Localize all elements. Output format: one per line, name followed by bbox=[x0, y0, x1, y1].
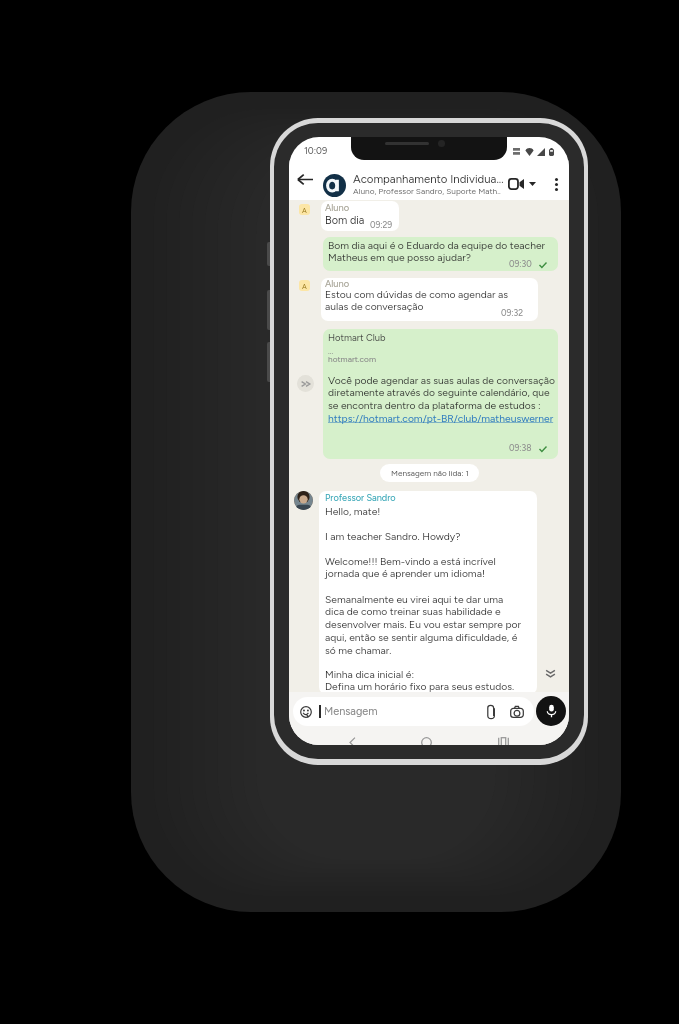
staticText: ... bbox=[328, 346, 334, 356]
staticText: Hello, mate! bbox=[325, 505, 381, 517]
button[interactable]: Home bbox=[418, 734, 434, 745]
button[interactable]: Mensagem bbox=[293, 697, 534, 726]
staticText: https://hotmart.com/pt-BR/club/matheuswe… bbox=[328, 412, 554, 424]
staticText: Professor Sandro bbox=[325, 492, 396, 503]
staticText: Estou com dúvidas de como agendar as aul… bbox=[325, 288, 509, 313]
button[interactable]: Back bbox=[294, 168, 316, 190]
button[interactable]: Record voice message bbox=[536, 696, 566, 726]
staticText: Você pode agendar as suas aulas de conve… bbox=[328, 374, 555, 412]
button[interactable]: More options bbox=[547, 175, 565, 193]
staticText: Aluno bbox=[325, 202, 350, 213]
staticText: 09:30 bbox=[509, 259, 532, 269]
staticText: A bbox=[302, 282, 307, 290]
button[interactable]: Mensagem não lida: 1 bbox=[380, 464, 479, 482]
staticText: Bom dia aqui é o Eduardo da equipe do te… bbox=[328, 239, 546, 264]
button[interactable]: Video call bbox=[504, 174, 540, 194]
staticText: Aluno bbox=[325, 278, 350, 289]
button[interactable]: Back bbox=[344, 734, 360, 745]
button[interactable]: Attach file bbox=[485, 704, 497, 720]
staticText: A bbox=[302, 206, 307, 214]
staticText: Minha dica inicial é: Defina um horário … bbox=[325, 668, 515, 693]
button[interactable]: Professor Sandro bbox=[319, 491, 537, 694]
button[interactable]: Camera bbox=[509, 705, 525, 719]
staticText: 09:32 bbox=[501, 308, 524, 318]
staticText: Mensagem bbox=[324, 705, 378, 718]
staticText: Welcome!!! Bem-vindo a está incrível jor… bbox=[325, 555, 496, 580]
button[interactable]: Hotmart Club bbox=[323, 329, 558, 459]
button[interactable]: Recent apps bbox=[495, 734, 511, 745]
staticText: hotmart.com bbox=[328, 354, 376, 364]
staticText: Hotmart Club bbox=[328, 332, 386, 343]
staticText: Semanalmente eu virei aqui te dar uma di… bbox=[325, 593, 522, 657]
staticText: Bom dia bbox=[325, 214, 365, 227]
button[interactable]: Aluno bbox=[321, 278, 538, 321]
button[interactable]: Scroll to bottom bbox=[542, 665, 558, 681]
button[interactable]: Aluno bbox=[321, 201, 399, 231]
staticText: 09:38 bbox=[509, 443, 532, 453]
staticText: 10:09 bbox=[304, 145, 328, 156]
staticText: Aluno, Professor Sandro, Suporte Math.. bbox=[353, 186, 501, 196]
staticText: Acompanhamento Individua... bbox=[353, 172, 504, 186]
staticText: Mensagem não lida: 1 bbox=[391, 468, 469, 478]
staticText: 09:29 bbox=[370, 220, 393, 230]
staticText: I am teacher Sandro. Howdy? bbox=[325, 530, 461, 542]
button[interactable]: Bom dia aqui é o Eduardo da equipe do te… bbox=[323, 237, 558, 271]
